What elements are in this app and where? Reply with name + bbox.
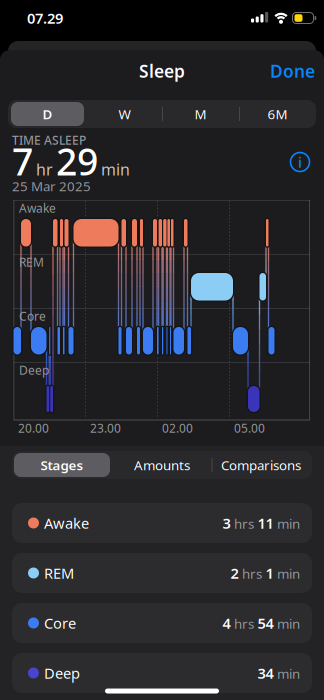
- button[interactable]: M: [165, 101, 235, 127]
- staticText: hrs: [234, 515, 254, 532]
- staticText: 07.29: [27, 8, 63, 28]
- staticText: Comparisons: [221, 456, 301, 474]
- staticText: 20.00: [18, 420, 49, 436]
- staticText: hrs: [242, 565, 262, 582]
- staticText: Amounts: [134, 456, 190, 474]
- staticText: Awake: [44, 513, 89, 533]
- button[interactable]: D: [11, 102, 84, 126]
- staticText: 4: [222, 613, 230, 633]
- staticText: 11: [257, 513, 273, 533]
- staticText: 23.00: [90, 420, 121, 436]
- staticText: D: [42, 105, 52, 123]
- staticText: min: [277, 565, 300, 582]
- staticText: Awake: [19, 200, 56, 216]
- staticText: min: [277, 515, 300, 532]
- staticText: 3: [222, 513, 230, 533]
- staticText: 7: [12, 136, 33, 186]
- button[interactable]: Done: [270, 59, 315, 82]
- staticText: REM: [19, 254, 44, 270]
- button[interactable]: 6M: [242, 101, 312, 127]
- staticText: 34: [257, 663, 273, 683]
- staticText: hrs: [234, 615, 254, 632]
- staticText: min: [277, 665, 300, 682]
- button[interactable]: Amounts: [115, 452, 209, 478]
- staticText: 2: [230, 563, 238, 583]
- staticText: 1: [265, 563, 273, 583]
- button[interactable]: Comparisons: [214, 452, 308, 478]
- staticText: hr: [36, 159, 53, 180]
- staticText: 6M: [267, 105, 287, 123]
- button[interactable]: W: [89, 101, 159, 127]
- staticText: W: [118, 105, 130, 123]
- staticText: 25 Mar 2025: [12, 177, 91, 195]
- staticText: REM: [44, 563, 74, 583]
- staticText: 29: [56, 136, 98, 186]
- staticText: min: [101, 159, 130, 180]
- staticText: min: [277, 615, 300, 632]
- staticText: Deep: [44, 663, 80, 683]
- button[interactable]: Stages: [14, 453, 110, 477]
- staticText: Deep: [19, 362, 49, 378]
- staticText: Core: [19, 308, 46, 324]
- staticText: TIME ASLEEP: [12, 132, 86, 148]
- staticText: Core: [44, 613, 76, 633]
- staticText: Done: [270, 59, 315, 82]
- staticText: Sleep: [139, 59, 185, 82]
- staticText: M: [194, 105, 206, 123]
- staticText: i: [298, 152, 302, 172]
- button[interactable]: i: [290, 152, 309, 172]
- staticText: 02.00: [162, 420, 193, 436]
- staticText: 54: [257, 613, 273, 633]
- staticText: 05.00: [234, 420, 265, 436]
- staticText: Stages: [40, 456, 83, 474]
